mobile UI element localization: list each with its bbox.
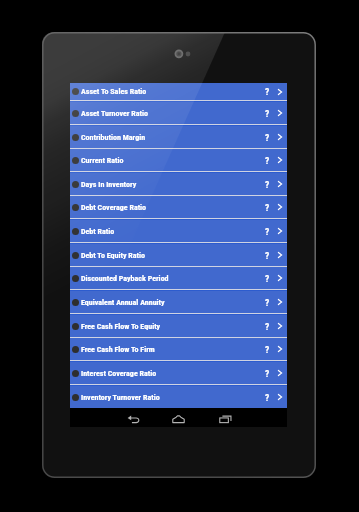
staticText: Asset Turnover Ratio bbox=[81, 109, 265, 118]
staticText: Debt Ratio bbox=[81, 227, 265, 236]
staticText: ? bbox=[265, 155, 270, 166]
staticText: Current Ratio bbox=[81, 156, 265, 165]
button[interactable]: Home bbox=[169, 410, 188, 429]
button[interactable]: Asset Turnover Ratio bbox=[70, 102, 287, 126]
staticText: Equivalent Annual Annuity bbox=[81, 298, 265, 307]
button[interactable]: Contribution Margin bbox=[70, 126, 287, 150]
button[interactable]: Debt Coverage Ratio bbox=[70, 196, 287, 220]
button[interactable]: Free Cash Flow To Firm bbox=[70, 338, 287, 362]
button[interactable]: Days In Inventory bbox=[70, 173, 287, 197]
staticText: Contribution Margin bbox=[81, 133, 265, 142]
staticText: ? bbox=[265, 344, 270, 355]
button[interactable]: Debt Ratio bbox=[70, 220, 287, 244]
staticText: Interest Coverage Ratio bbox=[81, 369, 265, 378]
staticText: ? bbox=[265, 108, 270, 119]
staticText: Asset To Sales Ratio bbox=[81, 87, 265, 96]
staticText: ? bbox=[265, 368, 270, 379]
button[interactable]: Discounted Payback Period bbox=[70, 267, 287, 291]
staticText: ? bbox=[265, 179, 270, 190]
button[interactable]: Equivalent Annual Annuity bbox=[70, 291, 287, 315]
staticText: Debt To Equity Ratio bbox=[81, 251, 265, 260]
staticText: ? bbox=[265, 392, 270, 403]
button[interactable]: Back bbox=[124, 410, 143, 429]
staticText: ? bbox=[265, 297, 270, 308]
button[interactable]: Recent apps bbox=[216, 410, 235, 429]
staticText: ? bbox=[265, 132, 270, 143]
button[interactable]: Free Cash Flow To Equity bbox=[70, 315, 287, 339]
button[interactable]: Inventory Turnover Ratio bbox=[70, 386, 287, 410]
staticText: ? bbox=[265, 86, 270, 97]
button[interactable]: Interest Coverage Ratio bbox=[70, 362, 287, 386]
staticText: ? bbox=[265, 250, 270, 261]
staticText: ? bbox=[265, 226, 270, 237]
staticText: Discounted Payback Period bbox=[81, 274, 265, 283]
staticText: ? bbox=[265, 273, 270, 284]
button[interactable]: Current Ratio bbox=[70, 149, 287, 173]
staticText: Free Cash Flow To Firm bbox=[81, 345, 265, 354]
staticText: Free Cash Flow To Equity bbox=[81, 322, 265, 331]
button[interactable]: Asset To Sales Ratio bbox=[70, 83, 287, 102]
staticText: Days In Inventory bbox=[81, 180, 265, 189]
staticText: Inventory Turnover Ratio bbox=[81, 393, 265, 402]
button[interactable]: Debt To Equity Ratio bbox=[70, 244, 287, 268]
staticText: Debt Coverage Ratio bbox=[81, 203, 265, 212]
staticText: ? bbox=[265, 321, 270, 332]
staticText: ? bbox=[265, 202, 270, 213]
